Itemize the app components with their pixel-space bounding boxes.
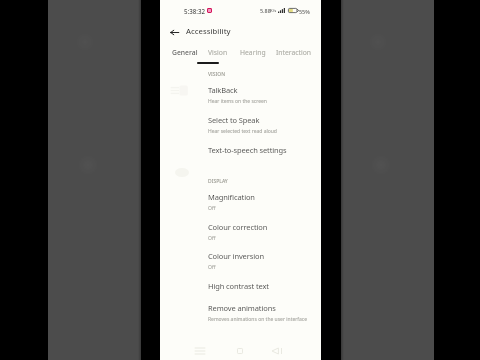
staticText: Off: [208, 235, 216, 242]
button[interactable]: Vision: [208, 44, 228, 61]
staticText: VISION: [208, 71, 226, 78]
staticText: K/s: [270, 8, 277, 14]
staticText: Interaction: [276, 48, 312, 57]
staticText: Text-to-speech settings: [208, 145, 287, 155]
button[interactable]: Home: [227, 341, 253, 360]
button[interactable]: General: [172, 44, 198, 61]
staticText: Remove animations: [208, 303, 276, 313]
staticText: Removes animations on the user interface: [208, 316, 308, 323]
staticText: Colour correction: [208, 222, 268, 232]
button[interactable]: TalkBack: [160, 83, 321, 112]
button[interactable]: Interaction: [276, 44, 312, 61]
staticText: TalkBack: [208, 85, 238, 95]
staticText: General: [172, 48, 198, 57]
staticText: Colour inversion: [208, 251, 264, 261]
staticText: Magnification: [208, 192, 255, 202]
staticText: Hearing: [240, 48, 266, 57]
staticText: Off: [208, 205, 216, 212]
staticText: DISPLAY: [208, 178, 228, 185]
button[interactable]: Back: [264, 341, 290, 360]
button[interactable]: Recent apps: [187, 341, 213, 360]
button[interactable]: High contrast text: [160, 279, 321, 301]
staticText: Vision: [208, 48, 228, 57]
staticText: Accessibility: [186, 26, 231, 36]
staticText: 55%: [299, 8, 310, 15]
staticText: 5:38:32: [184, 7, 206, 15]
staticText: Hear items on the screen: [208, 98, 267, 105]
button[interactable]: Back: [165, 23, 183, 41]
staticText: High contrast text: [208, 281, 269, 291]
button[interactable]: Colour correction: [160, 220, 321, 249]
staticText: 5.88: [260, 7, 271, 14]
button[interactable]: Remove animations: [160, 301, 321, 330]
button[interactable]: Colour inversion: [160, 249, 321, 278]
button[interactable]: Select to Speak: [160, 113, 321, 142]
button[interactable]: Text-to-speech settings: [160, 143, 321, 165]
button[interactable]: Hearing: [240, 44, 266, 61]
staticText: Hear selected text read aloud: [208, 128, 277, 135]
staticText: Off: [208, 264, 216, 271]
staticText: Select to Speak: [208, 115, 260, 125]
button[interactable]: Magnification: [160, 190, 321, 219]
